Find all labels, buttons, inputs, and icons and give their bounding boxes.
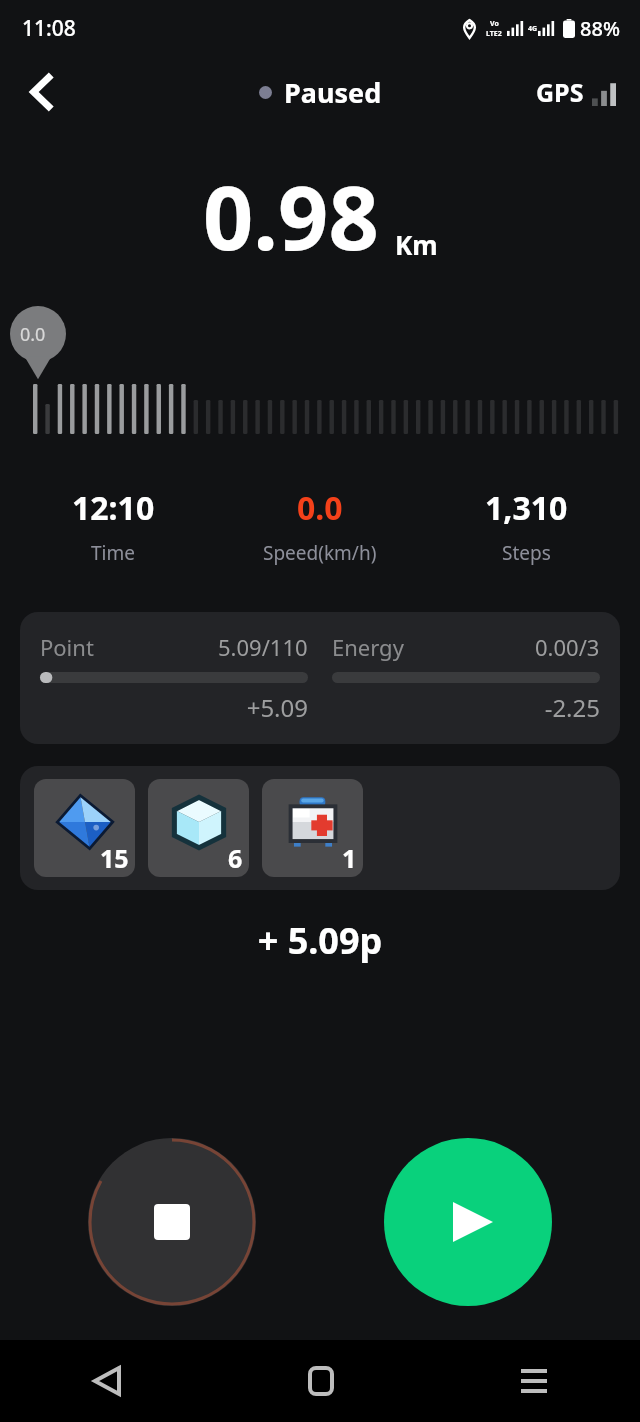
staticText: -2.25 bbox=[332, 691, 600, 724]
staticText: Energy bbox=[332, 632, 404, 662]
staticText: Point bbox=[40, 632, 94, 662]
staticText: 0.98 bbox=[203, 156, 379, 276]
staticText: 1 bbox=[342, 841, 357, 875]
staticText: 4G bbox=[528, 24, 538, 34]
staticText: 5.09/110 bbox=[218, 632, 308, 662]
button[interactable]: 12:10 bbox=[10, 486, 216, 566]
staticText: 15 bbox=[100, 841, 129, 875]
staticText: 0.0 bbox=[20, 322, 46, 347]
staticText: Time bbox=[91, 540, 135, 566]
staticText: 88% bbox=[580, 15, 620, 42]
staticText: Km bbox=[395, 227, 438, 262]
staticText: Steps bbox=[502, 540, 551, 566]
staticText: 1,310 bbox=[485, 486, 568, 530]
button[interactable]: Ice bbox=[148, 779, 249, 877]
button[interactable]: Resume bbox=[384, 1138, 552, 1306]
button[interactable]: GPS bbox=[530, 69, 622, 115]
button[interactable]: 1,310 bbox=[423, 486, 630, 566]
button[interactable]: Stop bbox=[88, 1138, 256, 1306]
staticText: Vo bbox=[490, 19, 499, 29]
button[interactable]: 0.0 bbox=[216, 486, 423, 566]
staticText: Paused bbox=[284, 74, 382, 111]
staticText: 11:08 bbox=[22, 14, 76, 43]
button[interactable]: Point bbox=[20, 612, 620, 744]
staticText: +5.09 bbox=[40, 691, 308, 724]
staticText: 0.0 bbox=[297, 486, 343, 530]
button[interactable]: Gem bbox=[34, 779, 135, 877]
staticText: Speed(km/h) bbox=[263, 540, 377, 566]
button[interactable]: Back bbox=[14, 64, 70, 120]
button[interactable]: Recents bbox=[427, 1340, 640, 1422]
staticText: GPS bbox=[536, 75, 584, 109]
staticText: 6 bbox=[228, 841, 243, 875]
staticText: LTE2 bbox=[486, 29, 502, 39]
staticText: + 5.09p bbox=[0, 916, 640, 965]
button[interactable]: Medkit bbox=[262, 779, 363, 877]
button[interactable]: Back bbox=[0, 1340, 214, 1422]
staticText: 12:10 bbox=[72, 486, 155, 530]
staticText: 0.00/3 bbox=[535, 632, 600, 662]
button[interactable]: Home bbox=[214, 1340, 427, 1422]
